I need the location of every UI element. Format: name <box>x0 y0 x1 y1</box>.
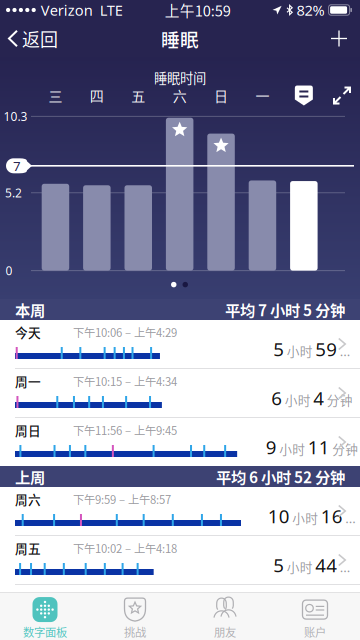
staticText: 分钟 <box>327 390 353 409</box>
staticText: 5 <box>273 337 284 361</box>
staticText: 下午9:59 – 上午8:57 <box>73 491 171 507</box>
staticText: 下午10:15 – 上午4:34 <box>73 373 177 389</box>
staticText: 5 <box>273 553 284 577</box>
staticText: 小时 <box>287 557 313 576</box>
staticText: LTE <box>100 0 123 20</box>
button[interactable]: 挑战 <box>90 593 180 640</box>
staticText: 44 <box>315 553 337 577</box>
staticText: 六 <box>173 85 187 106</box>
staticText: 小时 <box>287 341 313 360</box>
staticText: 挑战 <box>124 624 146 640</box>
staticText: … <box>345 509 356 527</box>
staticText: 周四 <box>15 588 41 606</box>
staticText: 数字面板 <box>23 624 67 640</box>
button[interactable]: 周一 <box>0 369 360 417</box>
staticText: 6 <box>271 386 282 410</box>
staticText: 下午10:16 – 上午4:25 <box>73 589 177 605</box>
staticText: 账户 <box>304 624 326 640</box>
staticText: 82% <box>297 0 325 20</box>
button[interactable]: 数字面板 <box>0 593 90 640</box>
staticText: 9 <box>266 435 277 459</box>
button[interactable]: 日 <box>204 82 238 108</box>
staticText: 本周 <box>15 298 45 321</box>
button[interactable]: 四 <box>80 82 114 108</box>
staticText: 返回 <box>22 25 58 52</box>
staticText: 睡眠 <box>161 25 199 52</box>
staticText: 下午10:06 – 上午4:29 <box>73 324 177 340</box>
staticText: 上午10:59 <box>165 0 231 21</box>
staticText: 今天 <box>15 323 41 341</box>
button[interactable]: 周日 <box>0 418 360 466</box>
staticText: 下午11:56 – 上午9:45 <box>73 422 177 438</box>
staticText: 7 <box>13 157 21 175</box>
staticText: 周五 <box>15 539 41 557</box>
staticText: 上周 <box>15 465 45 488</box>
button[interactable]: 今天 <box>0 320 360 368</box>
staticText: 59 <box>315 337 337 361</box>
staticText: 10 <box>268 504 290 528</box>
staticText: 4 <box>313 386 324 410</box>
staticText: 分钟 <box>332 439 358 458</box>
staticText: 小时 <box>279 439 305 458</box>
staticText: … <box>340 342 351 360</box>
staticText: 5.2 <box>5 185 22 201</box>
staticText: 周一 <box>15 372 41 390</box>
button[interactable]: 一 <box>245 82 279 108</box>
staticText: 小时 <box>285 390 311 409</box>
button[interactable]: Add <box>318 20 360 57</box>
staticText: 16 <box>321 504 343 528</box>
button[interactable]: 账户 <box>270 593 360 640</box>
button[interactable]: 六 <box>163 82 197 108</box>
staticText: 三 <box>48 85 62 106</box>
button[interactable]: 朋友 <box>180 593 270 640</box>
staticText: 周日 <box>15 421 41 439</box>
button[interactable]: 三 <box>38 82 72 108</box>
staticText: 周六 <box>15 490 41 508</box>
button[interactable]: 周五 <box>0 536 360 584</box>
staticText: 0 <box>5 263 12 278</box>
staticText: … <box>340 558 351 576</box>
button[interactable]: Selected day <box>295 85 313 105</box>
staticText: 平均 6 小时 52 分钟 <box>216 465 345 488</box>
staticText: 小时 <box>292 508 318 527</box>
button[interactable]: 周四 <box>0 585 360 633</box>
staticText: 睡眠时间 <box>154 68 206 87</box>
staticText: 10.3 <box>3 108 27 124</box>
staticText: Verizon <box>41 0 93 20</box>
staticText: 11 <box>308 435 330 459</box>
button[interactable]: Expand chart <box>334 87 350 103</box>
staticText: 小时 <box>298 606 324 625</box>
staticText: 日 <box>214 85 228 106</box>
button[interactable]: 周六 <box>0 487 360 535</box>
staticText: 朋友 <box>214 624 236 640</box>
button[interactable]: 返回 <box>0 20 68 57</box>
button[interactable]: 五 <box>121 82 155 108</box>
staticText: 下午10:02 – 上午4:18 <box>73 540 177 556</box>
staticText: 四 <box>90 85 104 106</box>
staticText: 一 <box>255 85 269 106</box>
staticText: 五 <box>131 85 145 106</box>
staticText: 平均 7 小时 5 分钟 <box>225 298 345 321</box>
